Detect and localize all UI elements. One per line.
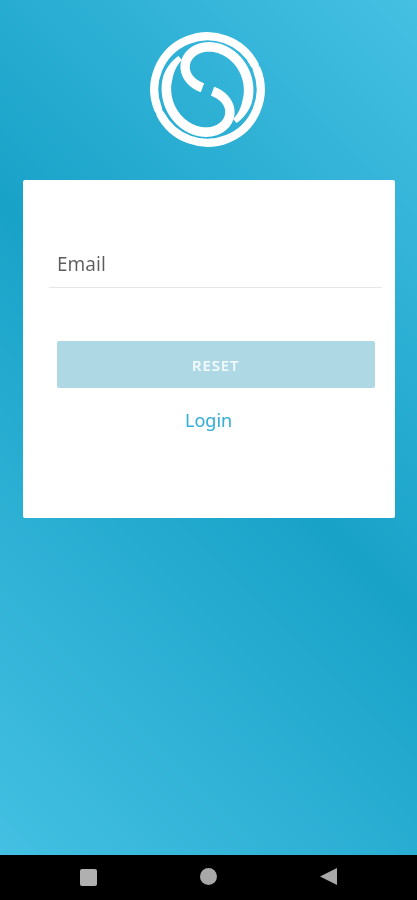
- staticText: RESET: [192, 355, 240, 375]
- staticText: Email: [57, 251, 106, 277]
- staticText: Login: [185, 408, 233, 433]
- button[interactable]: Recents: [80, 869, 97, 886]
- button[interactable]: Back: [320, 868, 337, 885]
- button[interactable]: RESET: [57, 341, 375, 388]
- button[interactable]: Login: [154, 403, 264, 437]
- button[interactable]: Home: [200, 868, 217, 885]
